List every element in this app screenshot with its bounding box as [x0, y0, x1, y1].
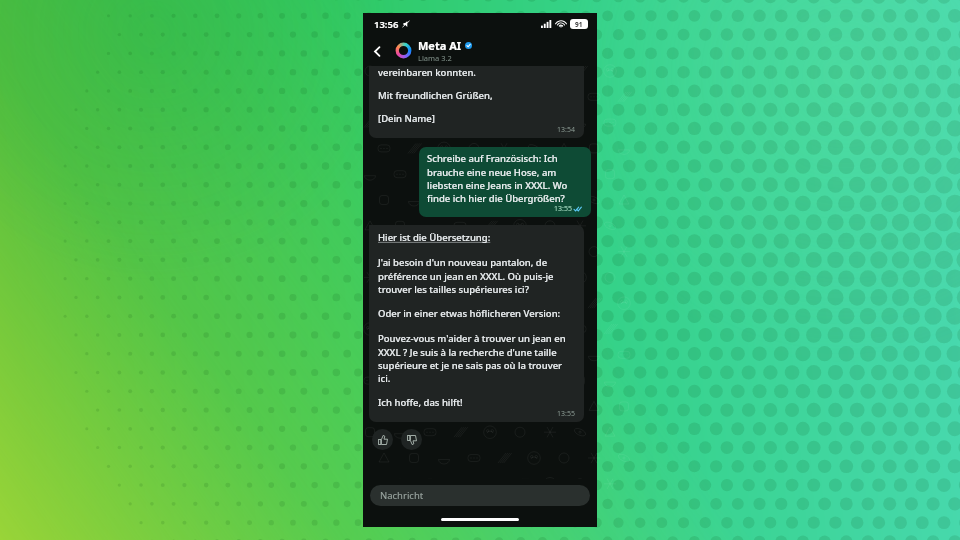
staticText: 13:54	[557, 125, 575, 135]
button[interactable]: Meta AI	[394, 38, 472, 63]
staticText: 91	[575, 20, 583, 29]
staticText: Hier ist die Übersetzung:	[378, 231, 491, 244]
button[interactable]: Dislike	[401, 429, 422, 450]
staticText: [Dein Name]	[378, 112, 435, 125]
staticText: 13:55	[557, 409, 575, 419]
button[interactable]: vereinbaren konnten.	[369, 66, 584, 138]
button[interactable]: Nachricht	[370, 485, 590, 506]
staticText: Mit freundlichen Grüßen,	[378, 89, 493, 102]
staticText: 13:55	[554, 204, 572, 214]
button[interactable]: Schreibe auf Französisch: Ich brauche ei…	[419, 147, 591, 217]
staticText: Schreibe auf Französisch: Ich brauche ei…	[427, 152, 583, 204]
button[interactable]: Like	[372, 429, 393, 450]
staticText: vereinbaren konnten.	[378, 66, 476, 79]
staticText: Meta AI	[418, 38, 462, 53]
staticText: Nachricht	[380, 489, 424, 502]
button[interactable]: Back	[367, 41, 387, 61]
staticText: J'ai besoin d'un nouveau pantalon, de pr…	[378, 256, 575, 295]
staticText: 13:56	[374, 18, 399, 31]
button[interactable]: Hier ist die Übersetzung:	[369, 225, 584, 422]
staticText: Oder in einer etwas höflicheren Version:	[378, 307, 561, 320]
staticText: Pouvez-vous m'aider à trouver un jean en…	[378, 332, 575, 384]
staticText: Llama 3.2	[418, 53, 452, 63]
staticText: Ich hoffe, das hilft!	[378, 396, 463, 409]
